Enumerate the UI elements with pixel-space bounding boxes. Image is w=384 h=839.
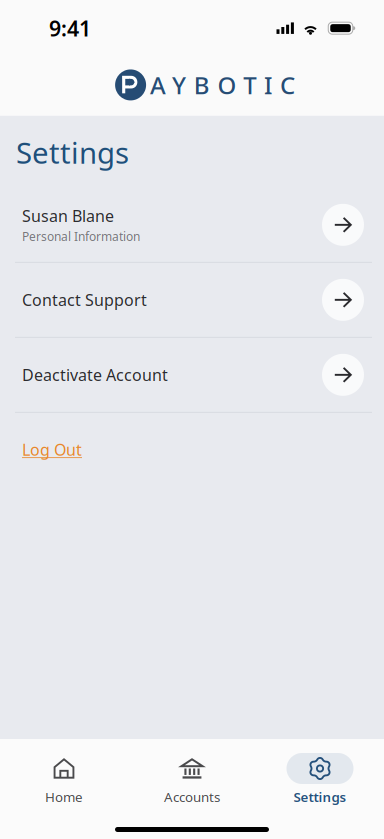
button[interactable]: Home <box>0 753 128 806</box>
button[interactable]: Settings <box>256 753 384 806</box>
staticText: Contact Support <box>22 289 147 310</box>
staticText: 9:41 <box>49 14 91 42</box>
staticText: Susan Blane <box>22 205 114 226</box>
button[interactable]: Susan Blane <box>0 188 384 262</box>
staticText: Deactivate Account <box>22 364 168 385</box>
staticText: Log Out <box>22 439 82 460</box>
button[interactable]: Contact Support <box>0 263 384 337</box>
staticText: Settings <box>293 788 346 806</box>
staticText: Personal Information <box>22 228 140 244</box>
button[interactable]: Deactivate Account <box>0 338 384 412</box>
button[interactable]: Accounts <box>128 753 256 806</box>
staticText: AYBOTIC <box>150 69 295 101</box>
staticText: Settings <box>16 133 129 172</box>
staticText: Home <box>45 788 83 806</box>
staticText: Accounts <box>164 788 220 806</box>
button[interactable]: Log Out <box>0 413 98 470</box>
